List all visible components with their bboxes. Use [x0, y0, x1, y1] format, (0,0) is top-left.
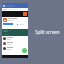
button[interactable]: Compose	[22, 48, 27, 53]
button[interactable]	[2, 36, 28, 41]
button[interactable]	[2, 17, 28, 22]
button[interactable]	[2, 46, 28, 51]
button[interactable]	[2, 3, 28, 8]
button[interactable]	[2, 29, 28, 36]
staticText: Split screen	[35, 29, 60, 35]
button[interactable]	[2, 41, 28, 46]
